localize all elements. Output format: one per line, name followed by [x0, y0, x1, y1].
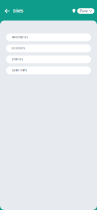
- staticText: Spare Parts: [11, 69, 26, 72]
- staticText: Motorcycles: [11, 36, 27, 39]
- staticText: Bikes: [13, 9, 23, 13]
- button[interactable]: Back: [3, 6, 12, 15]
- button[interactable]: Spare Parts: [6, 66, 91, 74]
- staticText: Scooters: [11, 47, 24, 50]
- button[interactable]: Pune: [72, 8, 94, 14]
- staticText: Pune: [80, 9, 88, 13]
- button[interactable]: Scooters: [6, 44, 91, 52]
- button[interactable]: Motorcycles: [6, 33, 91, 41]
- staticText: Bicycles: [11, 58, 22, 61]
- button[interactable]: Bicycles: [6, 55, 91, 63]
